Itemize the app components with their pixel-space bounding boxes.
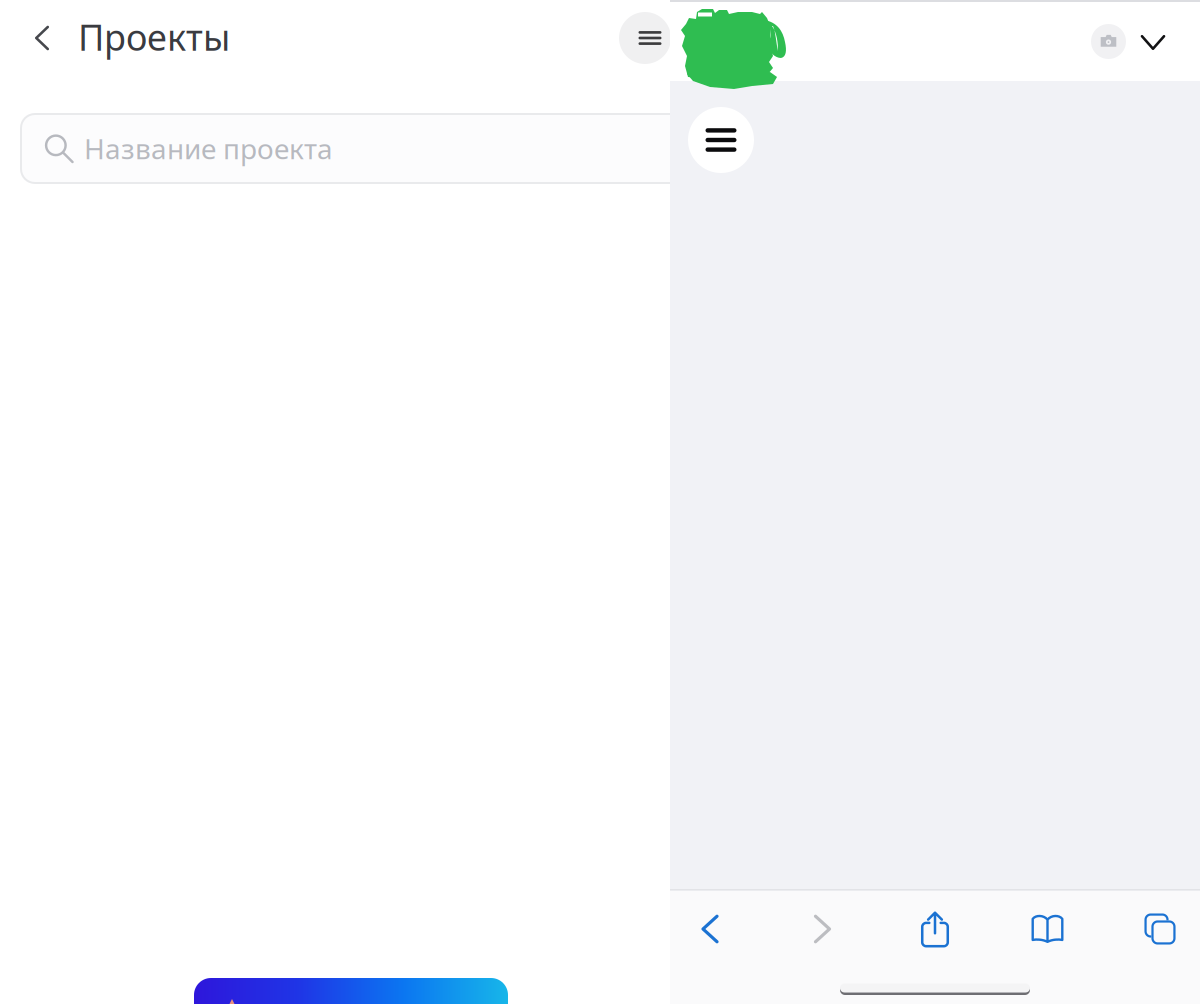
button[interactable]: Back: [16, 12, 68, 64]
staticText: Название проекта: [84, 130, 333, 167]
button[interactable]: Share: [903, 901, 967, 957]
button[interactable]: Название проекта: [20, 113, 696, 184]
button[interactable]: Tabs: [1128, 901, 1192, 957]
button[interactable]: Forward: [790, 901, 854, 957]
button[interactable]: Camera: [1091, 24, 1126, 59]
button[interactable]: Menu: [688, 107, 754, 173]
button[interactable]: Menu: [619, 12, 671, 64]
button[interactable]: Back: [678, 901, 742, 957]
staticText: Проекты: [78, 13, 230, 61]
button[interactable]: Collapse: [1131, 20, 1175, 64]
button[interactable]: Bookmarks: [1015, 901, 1079, 957]
button[interactable]: Create project: [194, 978, 508, 1004]
